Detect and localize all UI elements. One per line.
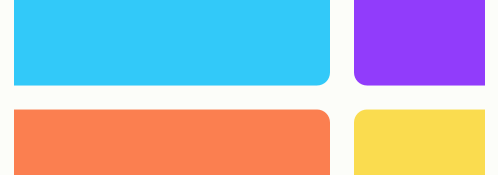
button[interactable]: Grape [354, 0, 485, 85]
button[interactable]: Lemon [354, 109, 485, 175]
button[interactable]: Sky [14, 0, 330, 85]
button[interactable]: Coral [14, 109, 330, 175]
